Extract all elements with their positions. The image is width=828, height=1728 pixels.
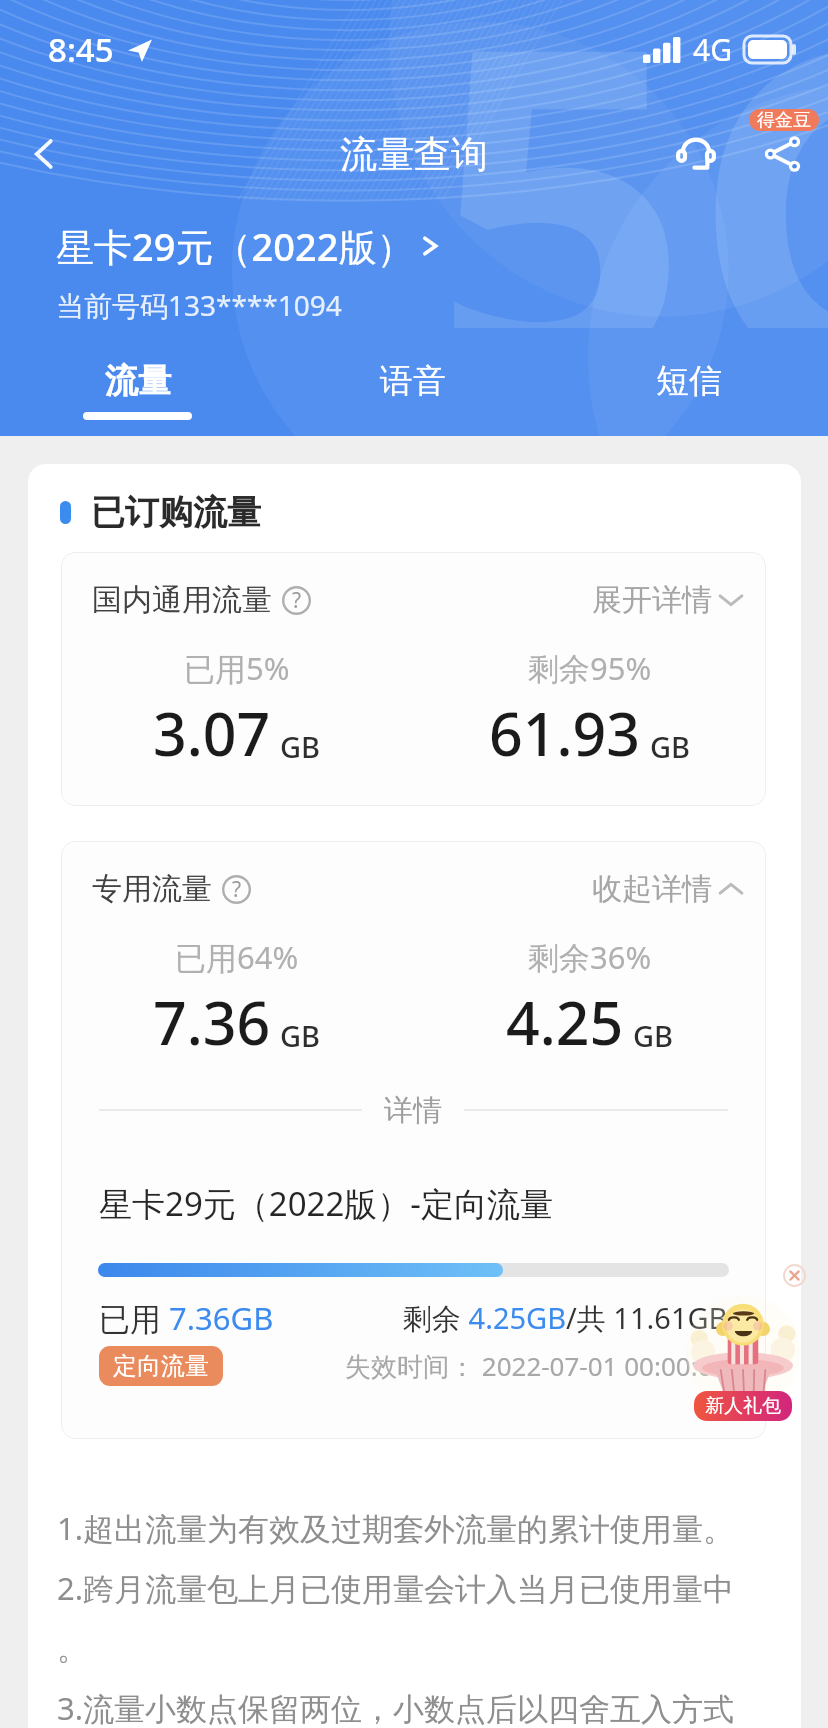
staticText: 新人礼包 — [705, 1394, 781, 1418]
staticText: 3.流量小数点保留两位，小数点后以四舍五入方式 — [57, 1687, 735, 1728]
staticText: 3.07 — [153, 693, 271, 773]
button[interactable]: New user gift — [692, 1296, 794, 1418]
button[interactable]: 语音 — [323, 358, 503, 414]
button[interactable]: 收起详情 — [576, 867, 744, 911]
staticText: 定向流量 — [113, 1351, 209, 1381]
staticText: 星卡29元（2022版）-定向流量 — [99, 1181, 553, 1226]
staticText: GB — [650, 727, 691, 766]
staticText: 展开详情 — [592, 581, 712, 619]
button[interactable]: Customer service — [664, 122, 728, 186]
button[interactable]: Back — [12, 122, 76, 186]
staticText: 剩余95% — [528, 647, 652, 689]
button[interactable]: 得金豆 — [749, 109, 819, 131]
button[interactable]: Share — [751, 122, 815, 186]
staticText: 已用5% — [184, 647, 290, 689]
staticText: 2.跨月流量包上月已使用量会计入当月已使用量中 — [57, 1567, 735, 1609]
button[interactable]: 星卡29元（2022版） — [56, 220, 443, 272]
staticText: 剩余36% — [528, 936, 652, 978]
button[interactable]: 定向流量 — [99, 1346, 223, 1386]
staticText: 流量 — [105, 360, 171, 402]
staticText: 专用流量 — [92, 870, 212, 908]
staticText: 收起详情 — [592, 870, 712, 908]
button[interactable]: 流量 — [47, 358, 227, 422]
staticText: 失效时间： 2022-07-01 00:00:00 — [345, 1348, 728, 1384]
button[interactable]: 短信 — [599, 358, 779, 414]
staticText: 。 — [57, 1629, 88, 1668]
staticText: 流量查询 — [340, 131, 488, 178]
staticText: 短信 — [656, 360, 722, 402]
staticText: 已订购流量 — [91, 491, 261, 534]
staticText: GB — [633, 1016, 674, 1055]
staticText: 已用 7.36GB — [99, 1297, 274, 1339]
staticText: ? — [292, 586, 302, 615]
staticText: 语音 — [380, 360, 446, 402]
staticText: 61.93 — [489, 693, 641, 773]
button[interactable]: Close — [783, 1264, 806, 1287]
button[interactable]: Help — [282, 586, 311, 615]
staticText: 星卡29元（2022版） — [56, 220, 415, 272]
staticText: GB — [280, 727, 321, 766]
staticText: 4G — [693, 29, 732, 70]
staticText: 得金豆 — [757, 109, 811, 131]
staticText: 8:45 — [48, 27, 114, 72]
staticText: 剩余 4.25GB/共 11.61GB — [403, 1298, 728, 1338]
staticText: 当前号码133****1094 — [56, 286, 342, 324]
staticText: 详情 — [384, 1092, 442, 1129]
staticText: 1.超出流量为有效及过期套外流量的累计使用量。 — [57, 1507, 735, 1549]
staticText: ? — [232, 875, 242, 904]
staticText: 7.36 — [153, 982, 271, 1062]
staticText: GB — [280, 1016, 321, 1055]
staticText: 已用64% — [175, 936, 299, 978]
staticText: 国内通用流量 — [92, 581, 272, 619]
staticText: 5G — [432, 0, 828, 328]
staticText: 4.25 — [506, 982, 624, 1062]
button[interactable]: 展开详情 — [576, 578, 744, 622]
button[interactable]: Help — [222, 875, 251, 904]
